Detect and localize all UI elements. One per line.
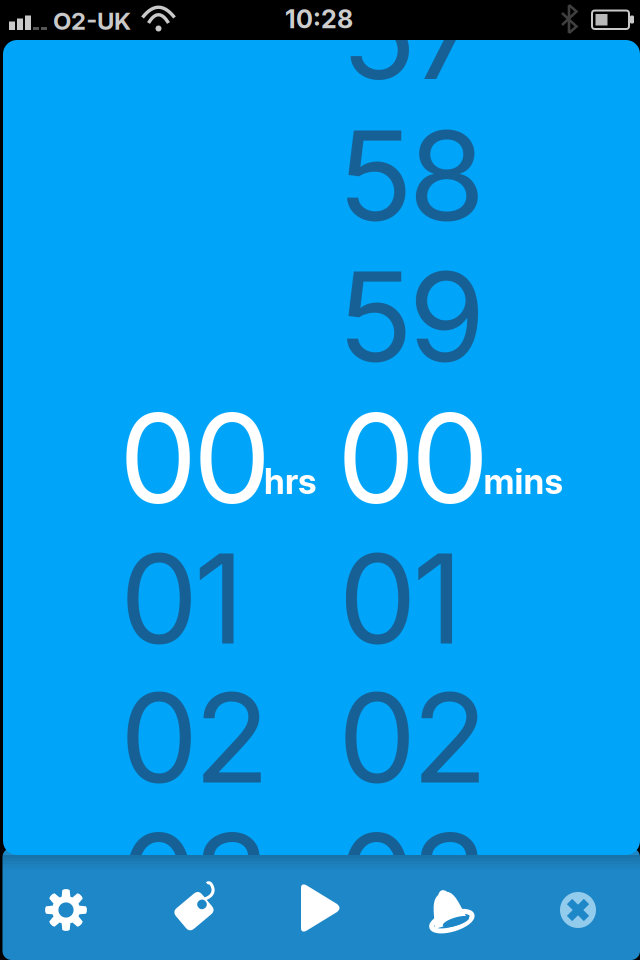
staticText: 59 [337,241,485,391]
staticText: 10:28 [285,4,353,34]
button[interactable] [130,856,256,960]
staticText: O2-UK [53,6,131,35]
button[interactable] [386,856,512,960]
staticText: 03 [337,803,488,953]
staticText: 57 [341,0,482,109]
staticText: 58 [337,100,485,250]
staticText: mins [483,460,562,502]
staticText: 02 [338,662,488,812]
staticText: 01 [120,523,244,673]
staticText: 02 [120,662,270,812]
staticText: 01 [338,523,462,673]
button[interactable] [515,856,640,960]
staticText: 00 [337,383,489,533]
button[interactable] [259,855,385,960]
staticText: 00 [119,383,271,533]
staticText: hrs [264,460,316,502]
button[interactable] [3,856,129,960]
staticText: 03 [119,803,270,953]
